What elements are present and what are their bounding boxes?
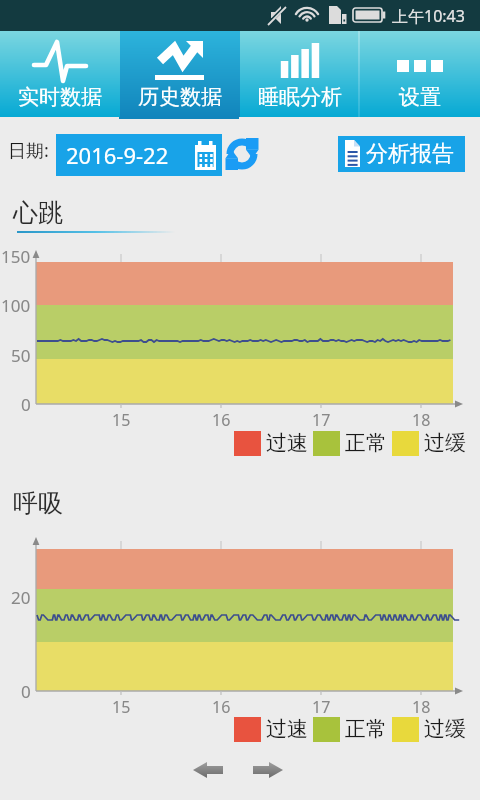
staticText: 20 xyxy=(11,586,31,608)
staticText: 呼吸 xyxy=(13,488,63,519)
staticText: 2016-9-22 xyxy=(66,140,169,170)
staticText: 实时数据 xyxy=(18,84,102,110)
button[interactable]: 过速 xyxy=(234,430,308,456)
staticText: 17 xyxy=(312,409,331,429)
button[interactable]: 过速 xyxy=(234,716,308,742)
button[interactable]: 设置 xyxy=(360,31,480,117)
staticText: 日期: xyxy=(8,138,49,163)
staticText: 16 xyxy=(212,696,231,716)
staticText: 50 xyxy=(11,344,31,366)
staticText: 0 xyxy=(21,393,31,415)
staticText: 18 xyxy=(412,696,431,716)
button[interactable]: Next xyxy=(250,757,290,783)
button[interactable]: 实时数据 xyxy=(0,31,120,117)
staticText: 心跳 xyxy=(13,197,63,228)
button[interactable]: 正常 xyxy=(313,716,387,742)
staticText: 正常 xyxy=(345,430,387,456)
staticText: 过速 xyxy=(266,430,308,456)
staticText: 150 xyxy=(1,245,31,267)
staticText: 分析报告 xyxy=(366,140,454,168)
button[interactable]: 正常 xyxy=(313,430,387,456)
staticText: 设置 xyxy=(399,84,441,110)
staticText: 过缓 xyxy=(424,716,466,742)
staticText: 0 xyxy=(21,680,31,702)
button[interactable]: Previous xyxy=(190,757,230,783)
staticText: 过速 xyxy=(266,716,308,742)
staticText: 18 xyxy=(412,409,431,429)
button[interactable]: 睡眠分析 xyxy=(240,31,360,117)
staticText: 15 xyxy=(112,696,131,716)
button[interactable]: 过缓 xyxy=(392,430,466,456)
staticText: 15 xyxy=(112,409,131,429)
staticText: 100 xyxy=(1,294,31,316)
staticText: 17 xyxy=(312,696,331,716)
button[interactable]: Refresh xyxy=(225,137,259,171)
staticText: 历史数据 xyxy=(138,84,222,110)
staticText: 上午10:43 xyxy=(392,5,465,27)
button[interactable]: 过缓 xyxy=(392,716,466,742)
button[interactable]: 分析报告 xyxy=(338,136,465,172)
staticText: 过缓 xyxy=(424,430,466,456)
staticText: 16 xyxy=(212,409,231,429)
staticText: 睡眠分析 xyxy=(258,84,342,110)
staticText: 正常 xyxy=(345,716,387,742)
button[interactable]: 历史数据 xyxy=(120,31,240,117)
button[interactable]: 2016-9-22 xyxy=(56,134,222,176)
